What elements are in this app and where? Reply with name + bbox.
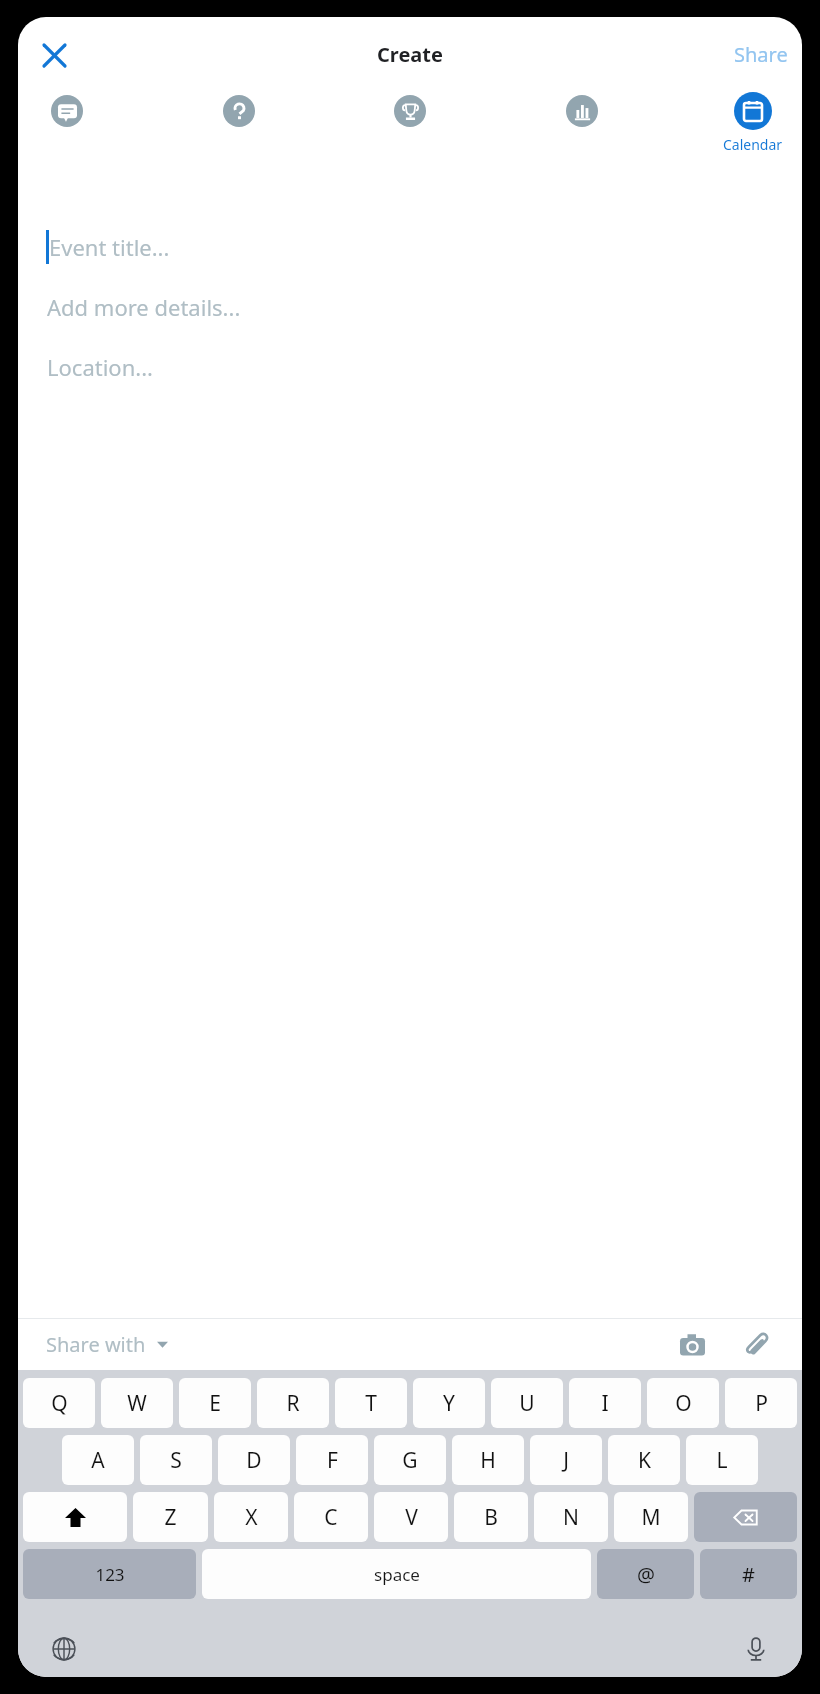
button[interactable]: Option bbox=[373, 92, 447, 192]
staticText: Location... bbox=[47, 352, 153, 382]
staticText: M bbox=[641, 1503, 661, 1532]
staticText: L bbox=[716, 1446, 728, 1475]
button[interactable]: J bbox=[530, 1435, 602, 1485]
button[interactable]: W bbox=[101, 1378, 173, 1428]
staticText: Z bbox=[164, 1503, 177, 1532]
button[interactable]: P bbox=[725, 1378, 797, 1428]
button[interactable]: Option bbox=[545, 92, 619, 192]
button[interactable]: Add more details... bbox=[18, 277, 802, 337]
button[interactable]: Option bbox=[30, 92, 104, 192]
button[interactable]: Share with bbox=[32, 1325, 182, 1364]
button[interactable]: Attach file bbox=[734, 1323, 778, 1367]
button[interactable]: @ bbox=[597, 1549, 694, 1599]
staticText: V bbox=[405, 1503, 418, 1532]
staticText: D bbox=[246, 1446, 262, 1475]
staticText: H bbox=[480, 1446, 496, 1475]
staticText: O bbox=[675, 1389, 692, 1418]
button[interactable]: B bbox=[454, 1492, 528, 1542]
button[interactable]: G bbox=[374, 1435, 446, 1485]
button[interactable]: L bbox=[686, 1435, 758, 1485]
button[interactable]: H bbox=[452, 1435, 524, 1485]
staticText: F bbox=[327, 1446, 338, 1475]
staticText: P bbox=[755, 1389, 768, 1418]
button[interactable]: Option bbox=[202, 92, 276, 192]
button[interactable]: F bbox=[296, 1435, 368, 1485]
staticText: Create bbox=[377, 41, 443, 68]
staticText: # bbox=[742, 1561, 755, 1588]
button[interactable]: O bbox=[647, 1378, 719, 1428]
button[interactable]: I bbox=[569, 1378, 641, 1428]
button[interactable]: R bbox=[257, 1378, 329, 1428]
staticText: U bbox=[519, 1389, 535, 1418]
button[interactable]: 123 bbox=[23, 1549, 196, 1599]
staticText: Add more details... bbox=[47, 292, 241, 322]
button[interactable]: S bbox=[140, 1435, 212, 1485]
button[interactable]: Calendar bbox=[716, 92, 790, 154]
button[interactable]: D bbox=[218, 1435, 290, 1485]
button[interactable]: Z bbox=[133, 1492, 208, 1542]
staticText: Event title... bbox=[49, 232, 170, 262]
button[interactable]: V bbox=[374, 1492, 448, 1542]
button[interactable]: X bbox=[214, 1492, 288, 1542]
staticText: N bbox=[563, 1503, 579, 1532]
button[interactable]: A bbox=[62, 1435, 134, 1485]
staticText: Share with bbox=[46, 1331, 146, 1358]
staticText: J bbox=[563, 1446, 569, 1475]
staticText: I bbox=[601, 1389, 609, 1418]
button[interactable]: K bbox=[608, 1435, 680, 1485]
staticText: T bbox=[365, 1389, 377, 1418]
button[interactable]: Share bbox=[720, 33, 802, 76]
button[interactable]: Close bbox=[28, 29, 80, 81]
staticText: space bbox=[374, 1563, 420, 1586]
staticText: K bbox=[638, 1446, 651, 1475]
button[interactable]: N bbox=[534, 1492, 608, 1542]
staticText: Y bbox=[443, 1389, 455, 1418]
button[interactable]: M bbox=[614, 1492, 688, 1542]
staticText: G bbox=[402, 1446, 418, 1475]
button[interactable]: Backspace bbox=[694, 1492, 797, 1542]
button[interactable]: U bbox=[491, 1378, 563, 1428]
button[interactable]: Y bbox=[413, 1378, 485, 1428]
staticText: Q bbox=[51, 1389, 68, 1418]
staticText: A bbox=[91, 1446, 105, 1475]
button[interactable]: E bbox=[179, 1378, 251, 1428]
staticText: W bbox=[127, 1389, 147, 1418]
button[interactable]: T bbox=[335, 1378, 407, 1428]
staticText: R bbox=[286, 1389, 300, 1418]
button[interactable]: C bbox=[294, 1492, 368, 1542]
staticText: @ bbox=[637, 1561, 655, 1588]
button[interactable]: Change keyboard bbox=[40, 1625, 88, 1673]
button[interactable]: # bbox=[700, 1549, 797, 1599]
button[interactable]: Camera bbox=[670, 1323, 714, 1367]
button[interactable]: Q bbox=[23, 1378, 95, 1428]
staticText: X bbox=[245, 1503, 258, 1532]
button[interactable]: Voice input bbox=[732, 1625, 780, 1673]
button[interactable]: Location... bbox=[18, 337, 802, 397]
staticText: 123 bbox=[95, 1563, 125, 1586]
button[interactable]: Shift bbox=[23, 1492, 127, 1542]
staticText: C bbox=[324, 1503, 338, 1532]
staticText: B bbox=[484, 1503, 498, 1532]
staticText: E bbox=[209, 1389, 221, 1418]
staticText: Calendar bbox=[723, 135, 783, 154]
staticText: S bbox=[170, 1446, 182, 1475]
button[interactable]: space bbox=[202, 1549, 591, 1599]
staticText: Share bbox=[734, 41, 788, 68]
